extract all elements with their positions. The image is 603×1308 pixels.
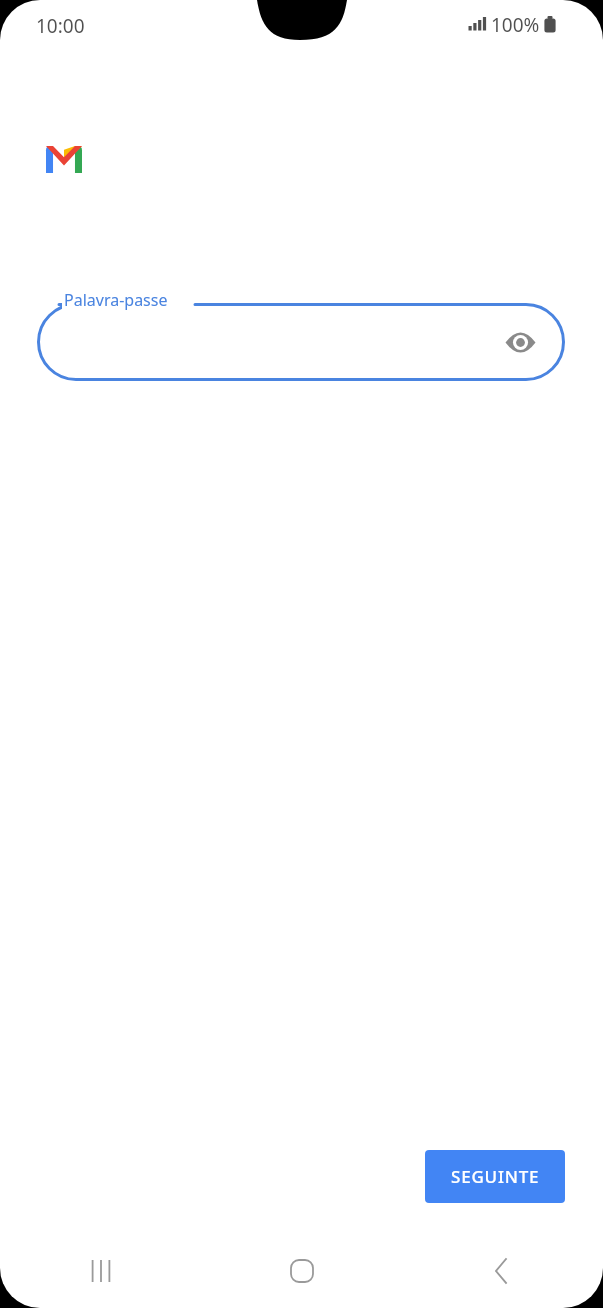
- button[interactable]: Mostrar palavra-passe: [498, 320, 542, 364]
- staticText: Palavra-passe: [64, 289, 168, 311]
- button[interactable]: Início: [201, 1234, 402, 1308]
- staticText: SEGUINTE: [451, 1165, 540, 1188]
- staticText: 100%: [491, 12, 540, 38]
- staticText: 10:00: [36, 13, 85, 39]
- button[interactable]: Recentes: [0, 1234, 201, 1308]
- button[interactable]: Mostrar palavra-passe: [37, 303, 565, 381]
- button[interactable]: SEGUINTE: [425, 1150, 565, 1203]
- button[interactable]: Voltar: [402, 1234, 603, 1308]
